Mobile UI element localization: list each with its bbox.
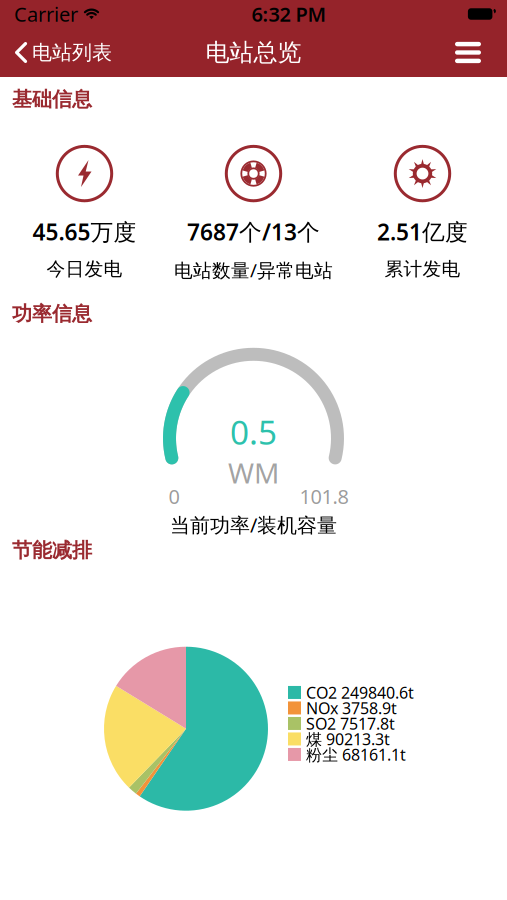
staticText: 6:32 PM: [251, 1, 326, 27]
button[interactable]: Menu: [455, 42, 507, 63]
staticText: 电站列表: [32, 40, 112, 65]
staticText: 煤 90213.3t: [306, 728, 390, 749]
staticText: 功率信息: [12, 301, 92, 326]
staticText: 电站数量/异常电站: [174, 258, 333, 282]
staticText: 电站总览: [205, 38, 301, 67]
staticText: CO2 249840.6t: [306, 682, 414, 703]
staticText: NOx 3758.9t: [306, 697, 397, 718]
staticText: 今日发电: [46, 258, 122, 281]
staticText: 粉尘 68161.1t: [306, 744, 406, 765]
staticText: 当前功率/装机容量: [170, 512, 337, 538]
staticText: 基础信息: [12, 87, 92, 112]
staticText: WM: [228, 454, 279, 491]
staticText: 累计发电: [384, 258, 460, 281]
button[interactable]: 电站列表: [0, 40, 112, 65]
staticText: 101.8: [299, 483, 348, 510]
staticText: SO2 7517.8t: [306, 713, 395, 734]
staticText: 0: [168, 483, 179, 510]
staticText: 节能减排: [12, 538, 92, 563]
staticText: Carrier: [14, 1, 78, 27]
staticText: 0.5: [230, 410, 277, 454]
staticText: 45.65万度: [32, 217, 136, 247]
staticText: 2.51亿度: [377, 217, 468, 247]
staticText: 7687个/13个: [187, 217, 320, 247]
